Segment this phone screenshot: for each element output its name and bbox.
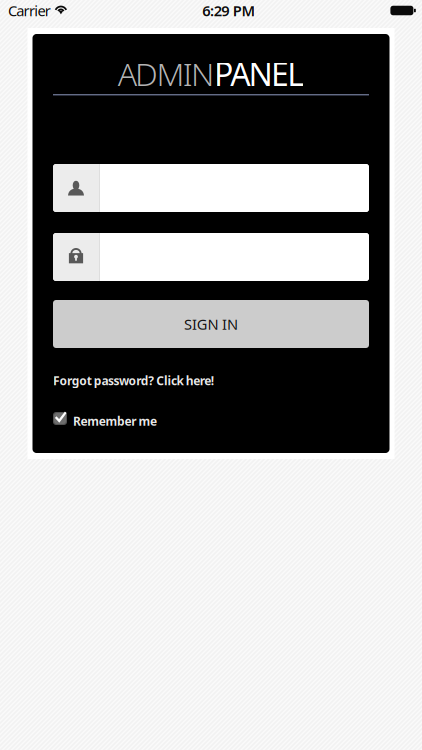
staticText: Carrier [8, 1, 51, 20]
button[interactable]: Forgot password? Click here! [53, 372, 369, 389]
button[interactable]: Remember me [53, 410, 369, 426]
staticText: PANEL [214, 52, 304, 95]
staticText: SIGN IN [184, 314, 238, 334]
staticText: Remember me [73, 413, 157, 429]
button[interactable]: Password [53, 233, 369, 281]
staticText: 6:29 PM [202, 1, 255, 20]
staticText: Forgot password? Click here! [53, 372, 214, 388]
button[interactable]: SIGN IN [53, 300, 369, 348]
staticText: ADMIN [118, 52, 214, 95]
button[interactable]: Username [53, 164, 369, 212]
